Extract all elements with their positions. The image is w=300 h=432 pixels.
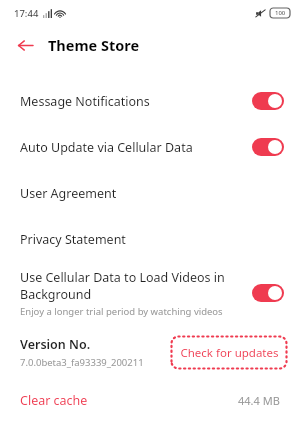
- staticText: 44.4 MB: [238, 393, 280, 408]
- staticText: 100: [275, 9, 286, 17]
- staticText: Clear cache: [20, 392, 88, 409]
- button[interactable]: Use Cellular Data to Load Videos in Back…: [0, 262, 300, 324]
- staticText: Theme Store: [48, 35, 140, 55]
- staticText: 17:44: [14, 7, 39, 20]
- staticText: Check for updates: [180, 345, 279, 361]
- button[interactable]: Clear cache: [0, 380, 300, 420]
- button[interactable]: Privacy Statement: [0, 216, 300, 262]
- button[interactable]: Check for updates: [170, 335, 288, 370]
- staticText: Use Cellular Data to Load Videos in Back…: [20, 269, 240, 302]
- staticText: 7.0.0beta3_fa93339_200211: [20, 356, 144, 369]
- button[interactable]: Toggle on: [252, 284, 284, 302]
- button[interactable]: User Agreement: [0, 170, 300, 216]
- staticText: Privacy Statement: [20, 231, 126, 248]
- button[interactable]: Toggle on: [252, 138, 284, 156]
- button[interactable]: Toggle on: [252, 92, 284, 110]
- staticText: Version No.: [20, 336, 91, 353]
- button[interactable]: Auto Update via Cellular Data: [0, 124, 300, 170]
- staticText: Auto Update via Cellular Data: [20, 139, 252, 156]
- staticText: User Agreement: [20, 185, 117, 202]
- staticText: Message Notifications: [20, 93, 252, 110]
- button[interactable]: Back: [8, 28, 42, 62]
- staticText: Enjoy a longer trial period by watching …: [20, 305, 223, 318]
- button[interactable]: Message Notifications: [0, 78, 300, 124]
